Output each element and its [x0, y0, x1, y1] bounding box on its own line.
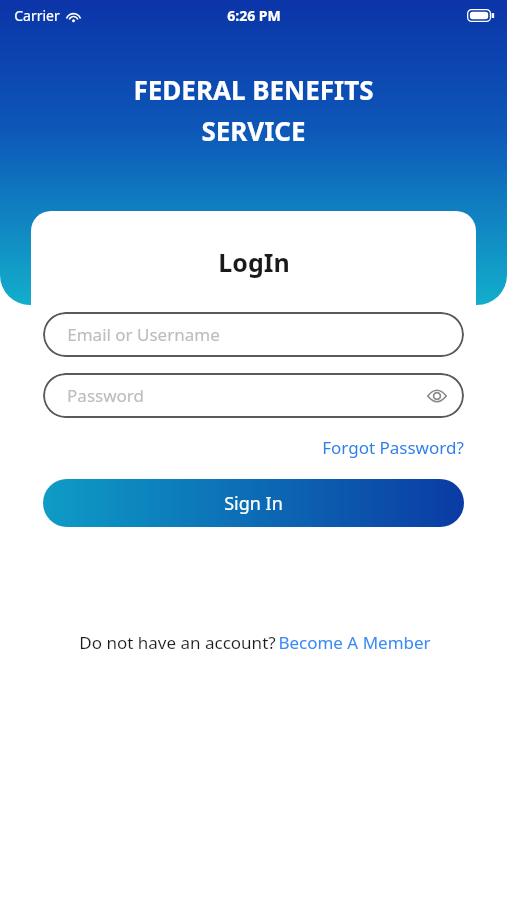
staticText: Email or Username	[67, 323, 220, 346]
staticText: Forgot Password?	[322, 436, 464, 459]
button[interactable]: Show password	[424, 383, 450, 409]
staticText: 6:26 PM	[227, 6, 281, 25]
staticText: SERVICE	[201, 113, 306, 148]
staticText: Carrier	[14, 6, 60, 25]
button[interactable]: Become A Member	[278, 631, 431, 654]
button[interactable]: Password	[43, 373, 464, 418]
button[interactable]: Sign In	[43, 479, 464, 527]
staticText: Password	[67, 384, 144, 407]
staticText: Become A Member	[278, 631, 431, 654]
button[interactable]: Forgot Password?	[310, 432, 476, 463]
staticText: FEDERAL BENEFITS	[133, 72, 374, 107]
button[interactable]: Email or Username	[43, 312, 464, 357]
staticText: Sign In	[224, 491, 283, 516]
staticText: LogIn	[218, 245, 290, 279]
staticText: Do not have an account?	[77, 631, 278, 654]
